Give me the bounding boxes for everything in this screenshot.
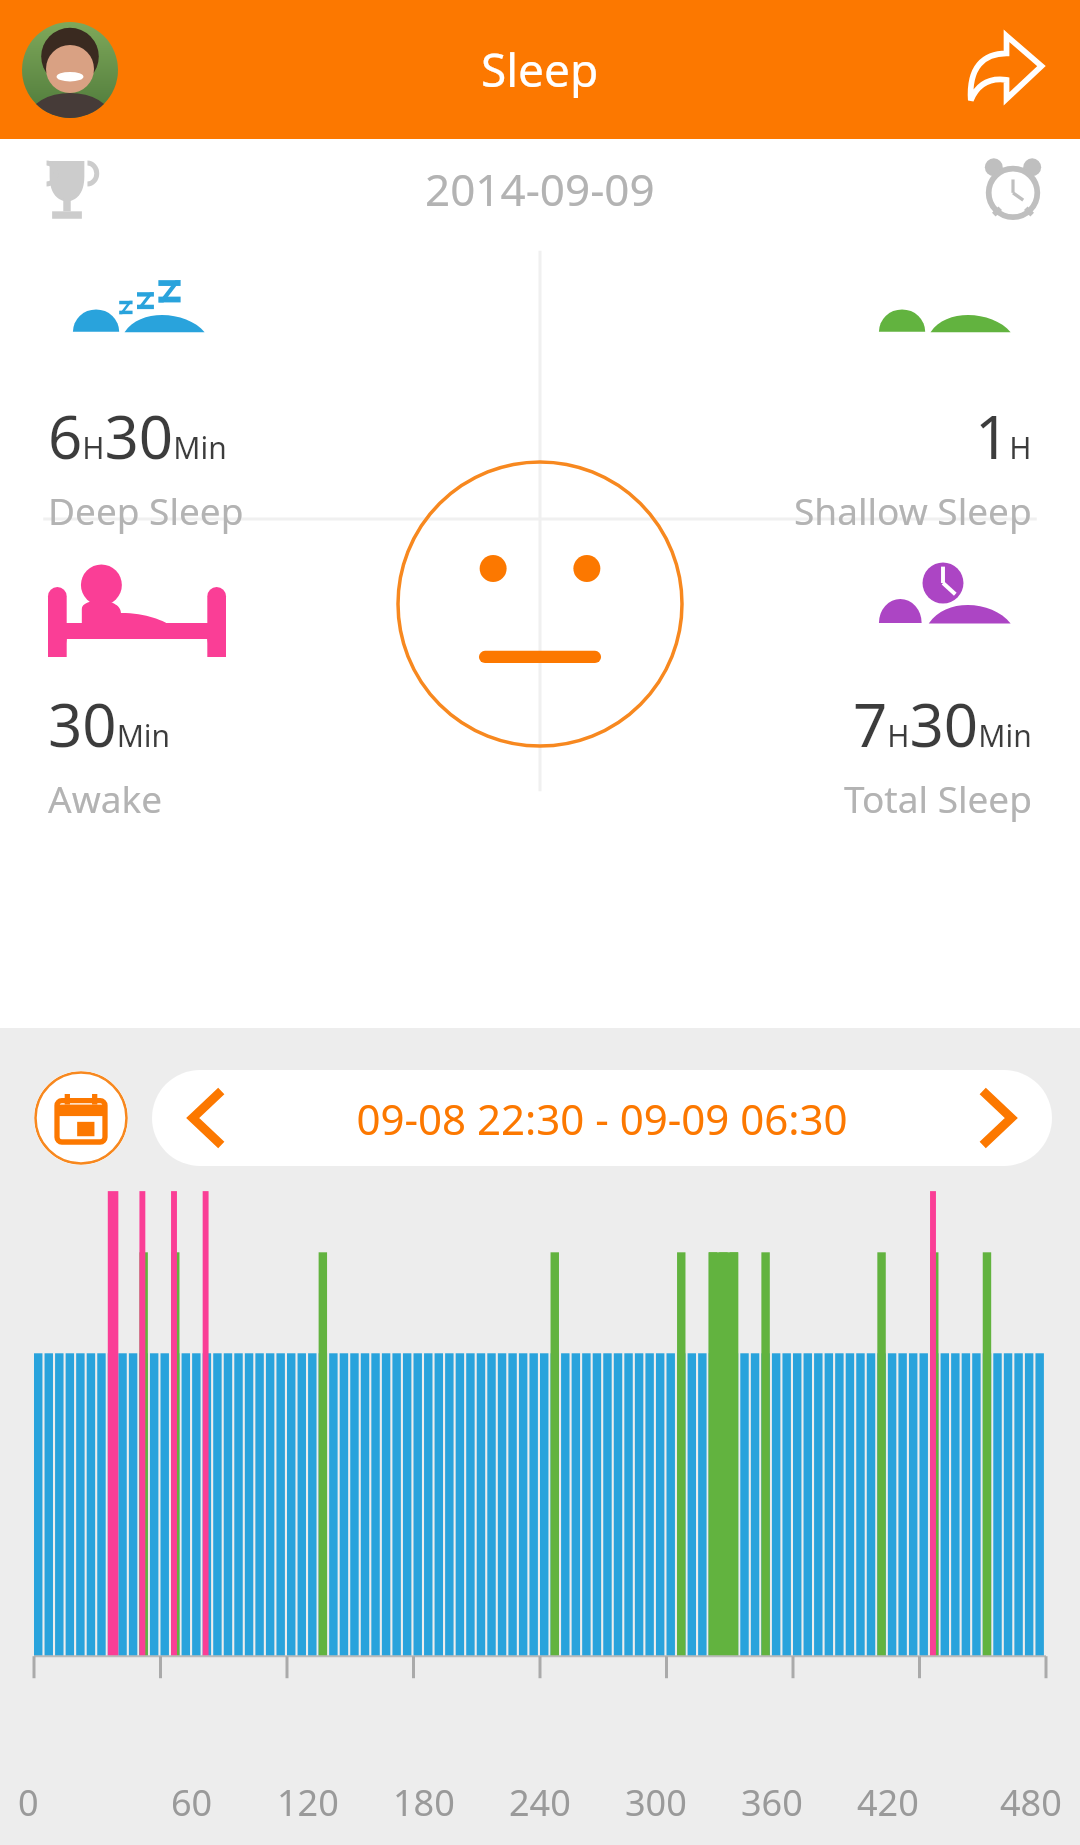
staticText: 480 bbox=[1000, 1778, 1062, 1827]
staticText: 6H30Min bbox=[48, 395, 227, 477]
button[interactable]: Alarm bbox=[970, 146, 1056, 232]
button[interactable]: Previous bbox=[152, 1070, 1052, 1166]
button[interactable]: Sleep quality bbox=[396, 460, 684, 748]
button[interactable]: Previous bbox=[152, 1070, 262, 1166]
staticText: Sleep bbox=[481, 38, 599, 101]
staticText: Awake bbox=[48, 773, 163, 823]
staticText: 180 bbox=[393, 1778, 455, 1827]
staticText: 60 bbox=[171, 1778, 213, 1827]
staticText: Shallow Sleep bbox=[794, 485, 1032, 535]
staticText: Total Sleep bbox=[844, 773, 1032, 823]
staticText: 1H bbox=[975, 395, 1032, 477]
staticText: 30Min bbox=[48, 683, 171, 765]
staticText: 7H30Min bbox=[853, 683, 1032, 765]
button[interactable]: Share bbox=[950, 15, 1060, 125]
staticText: 240 bbox=[509, 1778, 571, 1827]
button[interactable]: Profile bbox=[22, 22, 118, 118]
button[interactable]: Pick date bbox=[34, 1071, 128, 1165]
button[interactable]: Next bbox=[942, 1070, 1052, 1166]
staticText: 300 bbox=[625, 1778, 687, 1827]
staticText: 360 bbox=[741, 1778, 803, 1827]
staticText: 120 bbox=[277, 1778, 339, 1827]
staticText: 420 bbox=[857, 1778, 919, 1827]
button[interactable]: Achievements bbox=[24, 146, 110, 232]
staticText: Deep Sleep bbox=[48, 485, 244, 535]
staticText: 2014-09-09 bbox=[425, 159, 655, 219]
staticText: 09-08 22:30 - 09-09 06:30 bbox=[262, 1090, 942, 1147]
staticText: 0 bbox=[18, 1778, 39, 1827]
